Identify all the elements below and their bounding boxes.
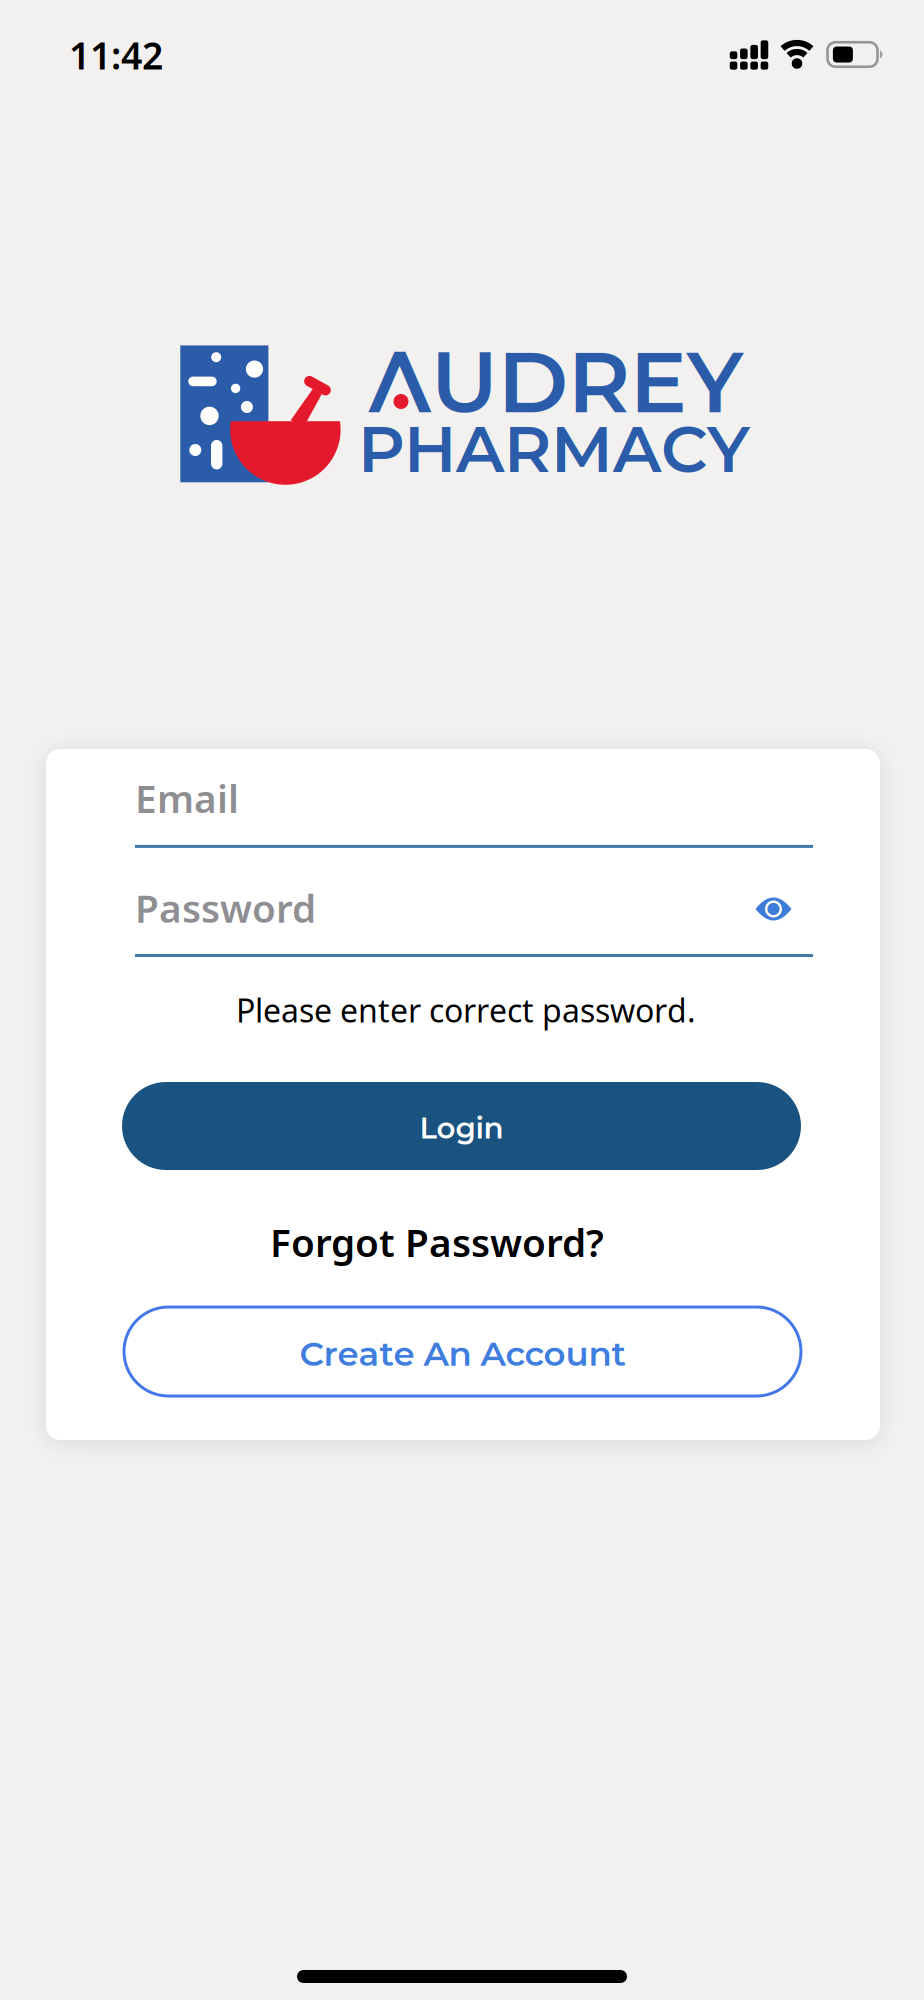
staticText: PHARMACY bbox=[358, 409, 750, 488]
staticText: Forgot Password? bbox=[270, 1216, 604, 1268]
staticText: Password bbox=[135, 882, 316, 933]
staticText: ΛUDREY bbox=[369, 330, 743, 434]
staticText: Please enter correct password. bbox=[236, 989, 696, 1031]
button[interactable]: Login bbox=[122, 1082, 801, 1170]
button[interactable]: Email bbox=[135, 771, 813, 848]
staticText: Email bbox=[135, 772, 239, 824]
staticText: Create An Account bbox=[299, 1333, 625, 1374]
staticText: Login bbox=[419, 1110, 503, 1146]
staticText: 11:42 bbox=[69, 30, 163, 80]
button[interactable]: Create An Account bbox=[124, 1307, 801, 1396]
button[interactable]: Password bbox=[135, 879, 813, 957]
button[interactable] bbox=[751, 887, 795, 931]
button[interactable]: Forgot Password? bbox=[270, 1216, 604, 1268]
